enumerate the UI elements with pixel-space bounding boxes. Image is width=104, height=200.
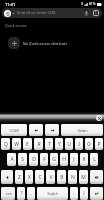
button[interactable]: Voice search: [81, 8, 91, 18]
button[interactable]: R: [34, 138, 43, 150]
button[interactable]: English: [37, 187, 68, 200]
staticText: T: [48, 141, 51, 148]
staticText: V: [49, 174, 53, 181]
staticText: P: [97, 141, 101, 148]
staticText: 1: [95, 11, 97, 15]
button[interactable]: A: [7, 153, 16, 166]
button[interactable]: T: [45, 138, 53, 150]
button[interactable]: V: [46, 170, 55, 184]
staticText: Quick access: [5, 23, 27, 28]
staticText: .: [73, 190, 75, 197]
button[interactable]: K: [80, 153, 88, 166]
staticText: J: [73, 156, 75, 163]
button[interactable]: C: [35, 170, 44, 184]
button[interactable]: Move right: [45, 124, 59, 136]
button[interactable]: O: [85, 138, 93, 150]
button[interactable]: Backspace: [90, 170, 103, 184]
staticText: Italian: [77, 128, 88, 133]
button[interactable]: E: [23, 138, 32, 150]
staticText: C: [38, 174, 42, 181]
button[interactable]: H: [60, 153, 68, 166]
button[interactable]: Z: [15, 170, 23, 184]
button[interactable]: W: [12, 138, 21, 150]
staticText: F: [43, 156, 46, 163]
button[interactable]: Tabs: [91, 8, 101, 18]
staticText: Y: [58, 141, 61, 148]
button[interactable]: X: [25, 170, 33, 184]
staticText: I: [78, 141, 80, 148]
button[interactable]: Add shortcut: [8, 37, 20, 49]
button[interactable]: Hide keyboard: [96, 115, 102, 121]
button[interactable]: I: [75, 138, 83, 150]
staticText: A: [10, 156, 14, 163]
staticText: English: [47, 192, 58, 196]
button[interactable]: N: [68, 170, 77, 184]
button[interactable]: Search or enter URL: [17, 8, 81, 18]
button[interactable]: ,: [27, 187, 35, 200]
button[interactable]: L: [90, 153, 98, 166]
staticText: O: [87, 141, 91, 148]
staticText: ,: [30, 190, 32, 197]
staticText: Z: [18, 174, 21, 181]
button[interactable]: Enter: [90, 187, 103, 200]
button[interactable]: U: [65, 138, 73, 150]
button[interactable]: B: [57, 170, 66, 184]
button[interactable]: .com: [1, 187, 15, 200]
staticText: ?: [20, 190, 23, 197]
staticText: 123#0: [9, 128, 19, 133]
button[interactable]: /: [80, 187, 88, 200]
staticText: 81%: [89, 2, 96, 6]
button[interactable]: Q: [1, 138, 10, 150]
button[interactable]: M: [79, 170, 88, 184]
staticText: G: [52, 156, 56, 163]
staticText: H: [62, 156, 66, 163]
staticText: K: [82, 156, 86, 163]
staticText: M: [81, 174, 86, 181]
button[interactable]: S: [18, 153, 27, 166]
staticText: E: [26, 141, 29, 148]
staticText: L: [93, 156, 96, 163]
button[interactable]: J: [70, 153, 78, 166]
staticText: W: [14, 141, 19, 148]
button[interactable]: D: [29, 153, 38, 166]
button[interactable]: Y: [55, 138, 63, 150]
staticText: R: [37, 141, 41, 148]
button[interactable]: F: [40, 153, 48, 166]
staticText: 3: [81, 2, 83, 6]
button[interactable]: P: [95, 138, 103, 150]
button[interactable]: .: [70, 187, 78, 200]
staticText: D: [32, 156, 36, 163]
button[interactable]: G: [50, 153, 58, 166]
staticText: No Quick access shortcuts: [23, 41, 68, 46]
staticText: B: [60, 174, 64, 181]
staticText: Search or enter URL: [17, 10, 57, 16]
button[interactable]: 123#0: [1, 124, 27, 136]
staticText: Q: [4, 141, 8, 148]
staticText: X: [28, 174, 31, 181]
button[interactable]: Move left: [29, 124, 43, 136]
staticText: S: [21, 156, 24, 163]
staticText: U: [67, 141, 71, 148]
staticText: N: [71, 174, 75, 181]
staticText: /: [83, 190, 85, 197]
button[interactable]: ?: [17, 187, 25, 200]
staticText: .com: [5, 192, 12, 196]
button[interactable]: Italian: [61, 124, 103, 136]
staticText: 11:01: [5, 2, 16, 7]
button[interactable]: Shift: [1, 170, 13, 184]
